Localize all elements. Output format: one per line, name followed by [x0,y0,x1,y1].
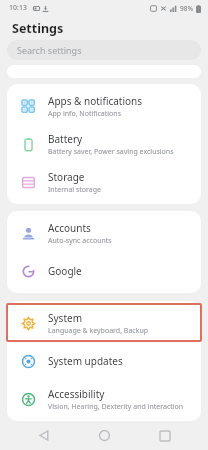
staticText: System updates [48,354,123,368]
staticText: Auto-sync accounts [48,236,112,246]
staticText: Battery [48,132,83,146]
button[interactable]: Storage [7,163,201,201]
staticText: 98% [180,4,193,13]
staticText: Google [48,264,82,278]
staticText: Apps & notifications [48,94,143,108]
staticText: Accessibility [48,387,105,401]
staticText: Search settings [17,44,82,56]
button[interactable]: System [7,304,201,342]
button[interactable]: Accounts [7,214,201,252]
staticText: 10:13 [9,3,27,13]
button[interactable]: Back [27,421,61,450]
button[interactable]: Home [87,421,121,450]
staticText: Internal storage [48,185,101,195]
button[interactable]: Search settings [7,40,201,60]
staticText: Settings [12,20,64,37]
button[interactable]: Apps & notifications [7,87,201,125]
staticText: Accounts [48,221,91,235]
button[interactable]: System updates [7,342,201,380]
staticText: Language & keyboard, Backup [48,326,149,336]
staticText: App info, Notifications [48,109,122,119]
button[interactable]: Accessibility [7,380,201,418]
button[interactable]: Recent apps [148,421,182,450]
button[interactable]: Battery [7,125,201,163]
button[interactable]: Google [7,252,201,290]
staticText: Storage [48,170,85,184]
staticText: Vision, Hearing, Dexterity and interacti… [48,402,184,412]
staticText: System [48,311,82,325]
staticText: Battery saver, Power saving exclusions [48,147,174,157]
